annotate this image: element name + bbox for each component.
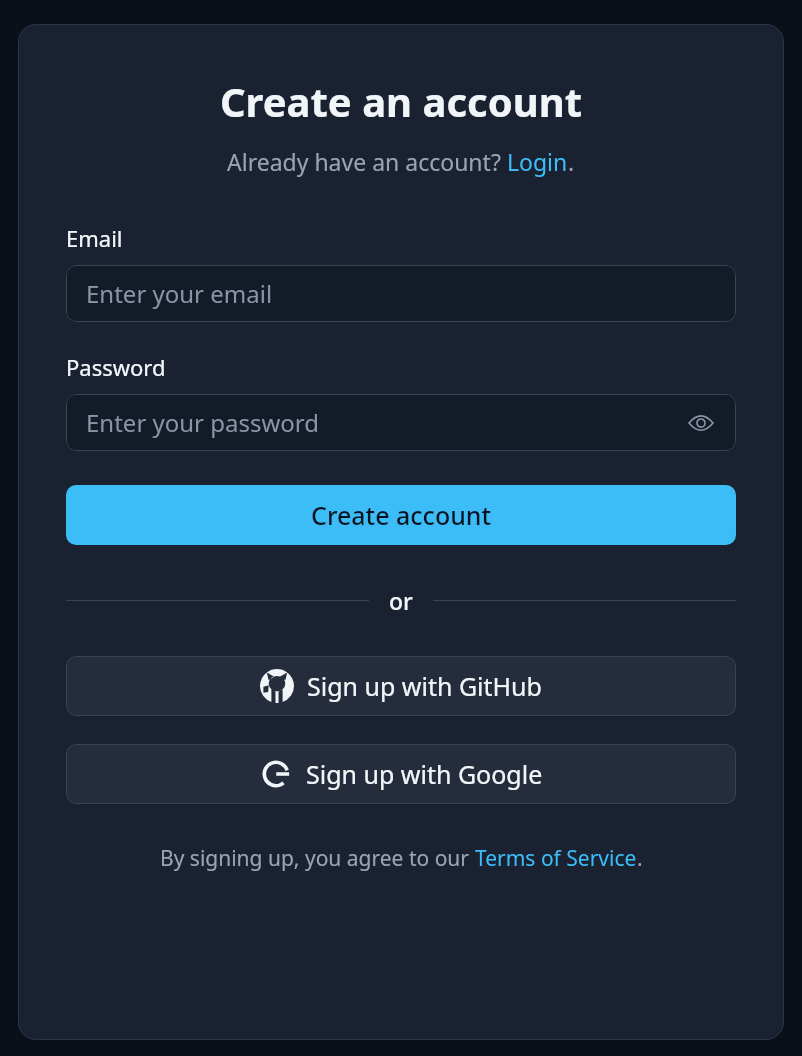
button[interactable]: Enter your email <box>66 265 736 322</box>
staticText: Login <box>507 146 568 177</box>
staticText: . <box>568 146 575 177</box>
button[interactable]: Login <box>507 146 568 177</box>
button[interactable]: Sign up with Google <box>66 744 736 804</box>
staticText: Create account <box>311 498 492 532</box>
button[interactable]: Terms of Service <box>475 844 637 873</box>
staticText: Enter your email <box>86 277 273 310</box>
button[interactable]: Sign up with GitHub <box>66 656 736 716</box>
staticText: By signing up, you agree to our <box>160 844 475 873</box>
staticText: Already have an account? <box>227 146 507 177</box>
staticText: Password <box>66 352 166 382</box>
staticText: Terms of Service <box>475 844 637 873</box>
staticText: Sign up with GitHub <box>307 669 542 703</box>
button[interactable]: Create account <box>66 485 736 545</box>
staticText: Create an account <box>66 74 736 128</box>
staticText: . <box>637 844 643 873</box>
button[interactable]: Show password <box>684 406 718 440</box>
button[interactable]: Enter your password <box>66 394 736 451</box>
staticText: Enter your password <box>86 406 320 439</box>
staticText: Sign up with Google <box>306 757 543 791</box>
staticText: or <box>389 585 413 616</box>
staticText: Email <box>66 223 123 253</box>
